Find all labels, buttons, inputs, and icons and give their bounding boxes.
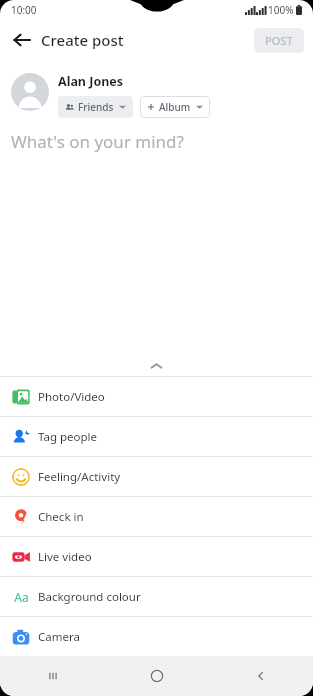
staticText: Create post bbox=[41, 30, 124, 50]
button[interactable]: POST bbox=[254, 28, 304, 53]
staticText: Aa bbox=[14, 589, 29, 605]
staticText: GIF bbox=[38, 669, 57, 685]
button[interactable]: Profile picture bbox=[11, 73, 49, 111]
staticText: Background colour bbox=[38, 589, 141, 605]
staticText: Album bbox=[159, 100, 191, 114]
button[interactable]: Collapse bbox=[0, 356, 313, 376]
staticText: What's on your mind? bbox=[11, 130, 184, 153]
button[interactable]: Back bbox=[11, 29, 33, 51]
button[interactable]: Check in bbox=[0, 497, 313, 536]
button[interactable]: Camera bbox=[0, 617, 313, 656]
button[interactable]: Photo/Video bbox=[0, 377, 313, 416]
button[interactable]: Aa bbox=[0, 577, 313, 616]
staticText: Tag people bbox=[38, 429, 98, 445]
staticText: Friends bbox=[78, 100, 114, 114]
staticText: Photo/Video bbox=[38, 389, 105, 405]
staticText: Alan Jones bbox=[58, 73, 124, 90]
button[interactable]: Feeling/Activity bbox=[0, 457, 313, 496]
staticText: Check in bbox=[38, 509, 84, 525]
button[interactable]: GIF bbox=[0, 657, 313, 696]
staticText: Camera bbox=[38, 629, 80, 645]
button[interactable]: Tag people bbox=[0, 417, 313, 456]
button[interactable]: Album bbox=[140, 96, 210, 118]
staticText: 10:00 bbox=[11, 3, 37, 17]
staticText: Feeling/Activity bbox=[38, 469, 121, 485]
button[interactable]: Friends bbox=[58, 96, 133, 118]
staticText: 100% bbox=[268, 3, 294, 17]
button[interactable]: Back bbox=[209, 656, 313, 696]
button[interactable]: Live video bbox=[0, 537, 313, 576]
staticText: POST bbox=[265, 33, 293, 48]
staticText: Live video bbox=[38, 549, 92, 565]
button[interactable]: Home bbox=[105, 656, 209, 696]
button[interactable]: Recents bbox=[0, 656, 105, 696]
